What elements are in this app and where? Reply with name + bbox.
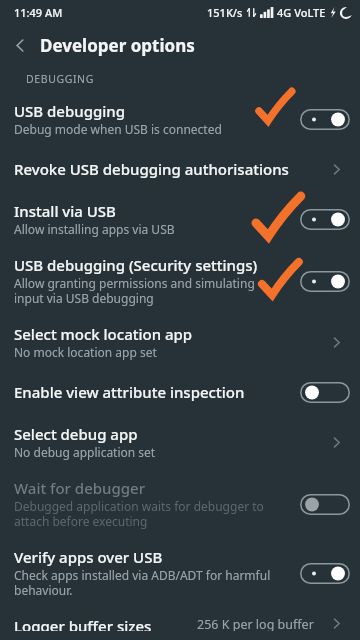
button[interactable]: Select mock location app <box>0 315 360 369</box>
staticText: Allow granting permissions and simulatin… <box>14 275 255 306</box>
button[interactable]: Wait for debugger <box>0 469 360 538</box>
staticText: Developer options <box>40 34 195 57</box>
staticText: Logger buffer sizes <box>14 616 152 631</box>
staticText: 151K/s <box>207 5 243 20</box>
staticText: 4G VoLTE <box>277 5 326 20</box>
button[interactable]: Revoke USB debugging authorisations <box>0 146 360 192</box>
staticText: Revoke USB debugging authorisations <box>14 159 289 179</box>
button[interactable]: Select debug app <box>0 415 360 469</box>
staticText: Enable view attribute inspection <box>14 382 245 402</box>
staticText: 256 K per log buffer <box>197 616 314 631</box>
button[interactable]: USB debugging <box>0 92 360 146</box>
button[interactable]: USB debugging (Security settings) <box>0 246 360 315</box>
button[interactable]: Install via USB <box>0 192 360 246</box>
button[interactable]: Toggle on <box>300 205 350 233</box>
staticText: No debug application set <box>14 444 156 460</box>
button[interactable]: Toggle on <box>300 559 350 587</box>
staticText: 11:49 AM <box>14 5 63 20</box>
button[interactable]: Back <box>0 25 40 65</box>
staticText: Verify apps over USB <box>14 547 163 567</box>
button[interactable]: Toggle off <box>300 490 350 518</box>
staticText: USB debugging <box>14 101 126 121</box>
button[interactable]: Logger buffer sizes <box>0 607 360 640</box>
staticText: Wait for debugger <box>14 478 146 498</box>
staticText: Allow installing apps via USB <box>14 221 175 237</box>
button[interactable]: Verify apps over USB <box>0 538 360 607</box>
staticText: DEBUGGING <box>26 72 94 86</box>
button[interactable]: Toggle on <box>300 267 350 295</box>
button[interactable]: Toggle on <box>300 105 350 133</box>
staticText: USB debugging (Security settings) <box>14 255 258 275</box>
staticText: Select mock location app <box>14 324 193 344</box>
staticText: Check apps installed via ADB/ADT for har… <box>14 567 271 598</box>
staticText: No mock location app set <box>14 344 157 360</box>
staticText: Debugged application waits for debugger … <box>14 498 264 529</box>
staticText: Select debug app <box>14 424 138 444</box>
button[interactable]: Toggle off <box>300 378 350 406</box>
button[interactable]: Enable view attribute inspection <box>0 369 360 415</box>
staticText: Install via USB <box>14 201 116 221</box>
staticText: Debug mode when USB is connected <box>14 121 222 137</box>
